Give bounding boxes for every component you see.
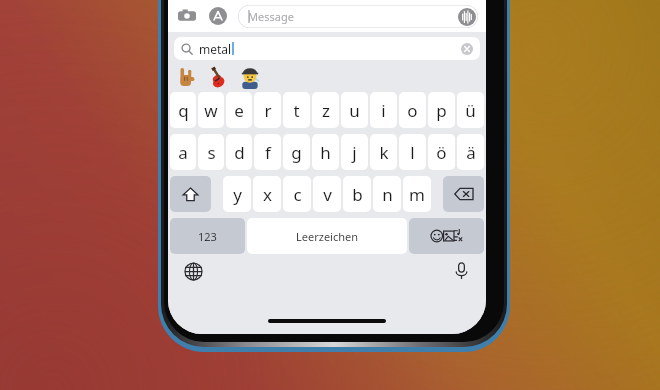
staticText: u — [349, 99, 360, 122]
staticText: h — [320, 141, 331, 164]
button[interactable]: Guitar emoji — [206, 65, 230, 89]
staticText: p — [436, 99, 447, 122]
button[interactable]: u — [341, 92, 368, 128]
button[interactable]: y — [223, 176, 251, 212]
staticText: j — [352, 141, 357, 164]
staticText: r — [264, 99, 272, 122]
staticText: 123 — [198, 229, 217, 244]
button[interactable]: ä — [457, 134, 484, 170]
button[interactable]: k — [370, 134, 397, 170]
staticText: d — [234, 141, 245, 164]
button[interactable]: q — [170, 92, 196, 128]
button[interactable]: Message — [238, 5, 478, 28]
button[interactable]: Shift — [170, 176, 211, 212]
button[interactable]: j — [341, 134, 368, 170]
button[interactable]: d — [226, 134, 252, 170]
staticText: metal — [199, 41, 232, 57]
staticText: f — [265, 141, 271, 164]
staticText: g — [291, 141, 302, 164]
button[interactable]: e — [226, 92, 252, 128]
staticText: x — [263, 183, 272, 206]
button[interactable]: Factory worker emoji — [238, 65, 262, 89]
staticText: ö — [436, 141, 447, 164]
staticText: k — [379, 141, 389, 164]
button[interactable]: Emoji and more — [409, 218, 484, 254]
button[interactable]: Dictation — [450, 259, 472, 281]
staticText: q — [178, 99, 189, 122]
button[interactable]: Record audio — [457, 7, 476, 26]
staticText: Leerzeichen — [296, 229, 359, 244]
button[interactable]: o — [399, 92, 426, 128]
button[interactable]: r — [254, 92, 281, 128]
button[interactable]: App Store — [207, 5, 229, 27]
staticText: ü — [465, 99, 476, 122]
button[interactable]: f — [254, 134, 281, 170]
staticText: y — [233, 183, 242, 206]
staticText: Message — [248, 9, 294, 24]
button[interactable]: s — [198, 134, 224, 170]
button[interactable]: x — [253, 176, 281, 212]
button[interactable]: Camera — [176, 5, 198, 27]
staticText: b — [352, 183, 363, 206]
button[interactable]: h — [312, 134, 339, 170]
button[interactable]: t — [283, 92, 310, 128]
staticText: v — [323, 183, 332, 206]
button[interactable]: i — [370, 92, 397, 128]
button[interactable]: a — [170, 134, 196, 170]
button[interactable]: w — [198, 92, 224, 128]
staticText: a — [178, 141, 188, 164]
button[interactable]: g — [283, 134, 310, 170]
button[interactable]: Backspace — [443, 176, 484, 212]
staticText: s — [207, 141, 216, 164]
staticText: c — [293, 183, 302, 206]
button[interactable]: n — [373, 176, 401, 212]
button[interactable]: m — [403, 176, 431, 212]
button[interactable]: b — [343, 176, 371, 212]
button[interactable]: l — [399, 134, 426, 170]
button[interactable]: metal — [174, 37, 480, 60]
button[interactable]: Clear search — [460, 42, 473, 55]
staticText: i — [381, 99, 386, 122]
button[interactable]: z — [312, 92, 339, 128]
staticText: n — [382, 183, 393, 206]
staticText: o — [407, 99, 418, 122]
button[interactable]: v — [313, 176, 341, 212]
button[interactable]: ö — [428, 134, 455, 170]
staticText: m — [409, 183, 425, 206]
staticText: w — [204, 99, 218, 122]
staticText: z — [322, 99, 330, 122]
staticText: t — [293, 99, 300, 122]
button[interactable]: 123 — [170, 218, 245, 254]
button[interactable]: Change keyboard language — [182, 260, 204, 282]
button[interactable]: c — [283, 176, 311, 212]
staticText: l — [410, 141, 415, 164]
staticText: e — [234, 99, 244, 122]
button[interactable]: ü — [457, 92, 484, 128]
button[interactable]: Leerzeichen — [247, 218, 407, 254]
staticText: ä — [466, 141, 476, 164]
button[interactable]: p — [428, 92, 455, 128]
button[interactable]: Rock on emoji — [174, 65, 198, 89]
